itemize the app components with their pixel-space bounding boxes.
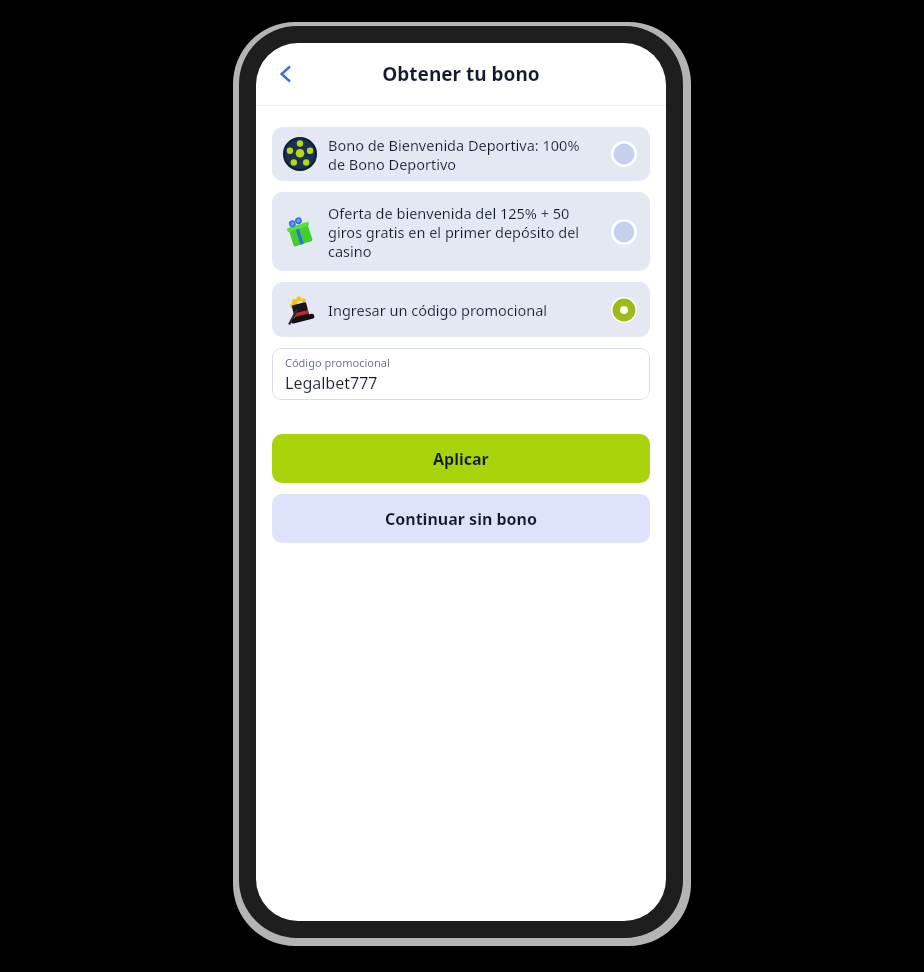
button[interactable]: Continuar sin bono: [272, 494, 650, 543]
staticText: Código promocional: [285, 355, 390, 370]
staticText: Bono de Bienvenida Deportiva: 100% de Bo…: [328, 135, 580, 174]
button[interactable]: Bono de Bienvenida Deportiva: 100% de Bo…: [272, 127, 650, 181]
button[interactable]: Back: [264, 52, 308, 96]
staticText: Ingresar un código promocional: [328, 300, 548, 320]
staticText: Legalbet777: [285, 372, 378, 394]
staticText: Continuar sin bono: [385, 508, 537, 530]
button[interactable]: Oferta de bienvenida del 125% + 50 giros…: [272, 192, 650, 271]
button[interactable]: Código promocional: [272, 348, 650, 400]
staticText: Aplicar: [433, 448, 489, 470]
button[interactable]: Ingresar un código promocional: [272, 282, 650, 337]
staticText: Oferta de bienvenida del 125% + 50 giros…: [328, 203, 580, 261]
staticText: Obtener tu bono: [382, 61, 540, 87]
button[interactable]: Aplicar: [272, 434, 650, 483]
